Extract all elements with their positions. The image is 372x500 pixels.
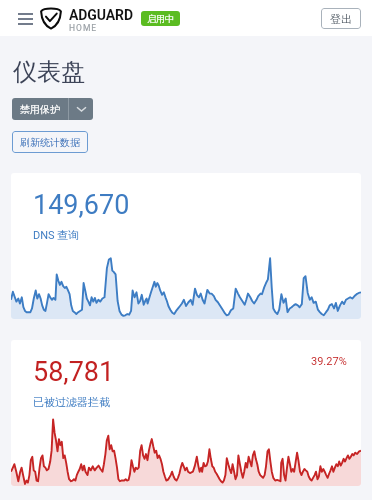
button[interactable]: 禁用保护 bbox=[12, 98, 68, 120]
staticText: HOME bbox=[69, 23, 98, 33]
button[interactable]: 刷新统计数据 bbox=[12, 131, 88, 153]
button[interactable]: 149,670 bbox=[11, 173, 361, 319]
staticText: 149,670 bbox=[33, 189, 130, 221]
staticText: 刷新统计数据 bbox=[20, 136, 80, 149]
staticText: 禁用保护 bbox=[20, 103, 60, 116]
button[interactable]: 启用中 bbox=[141, 11, 180, 26]
button[interactable]: More protection options bbox=[69, 98, 93, 120]
button[interactable]: 登出 bbox=[321, 8, 361, 29]
staticText: 39.27% bbox=[311, 355, 347, 368]
staticText: 启用中 bbox=[147, 13, 174, 24]
staticText: 已被过滤器拦截 bbox=[33, 395, 110, 409]
staticText: 仪表盘 bbox=[13, 57, 85, 87]
staticText: 58,781 bbox=[33, 356, 115, 388]
staticText: ADGUARD bbox=[69, 7, 133, 23]
staticText: DNS 查询 bbox=[33, 228, 80, 242]
button[interactable]: 58,781 bbox=[11, 340, 361, 486]
button[interactable]: Menu bbox=[18, 7, 33, 29]
staticText: 登出 bbox=[330, 12, 352, 26]
